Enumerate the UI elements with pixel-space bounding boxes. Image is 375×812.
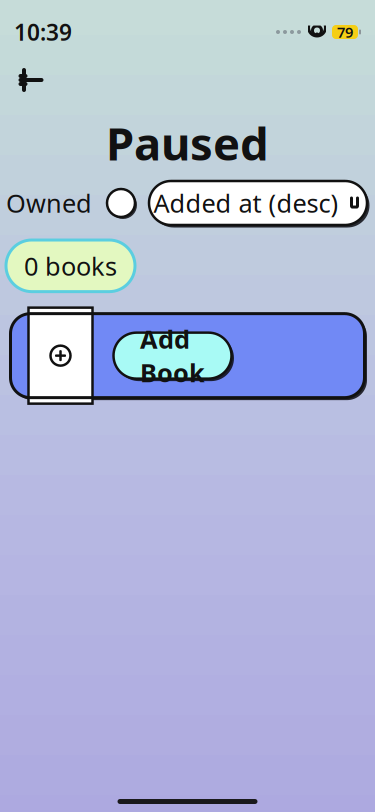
staticText: Added at (desc) [153, 186, 338, 220]
button[interactable]: Add Book [110, 330, 234, 382]
button[interactable]: Added at (desc) [146, 178, 370, 228]
staticText: Owned [6, 186, 92, 220]
staticText: Paused [106, 113, 269, 173]
button[interactable]: Owned [6, 186, 138, 220]
staticText: 10:39 [14, 17, 72, 47]
staticText: Add Book [140, 322, 205, 389]
staticText: 79 [337, 22, 353, 42]
button[interactable]: Back [7, 58, 55, 102]
staticText: 0 books [24, 249, 117, 283]
